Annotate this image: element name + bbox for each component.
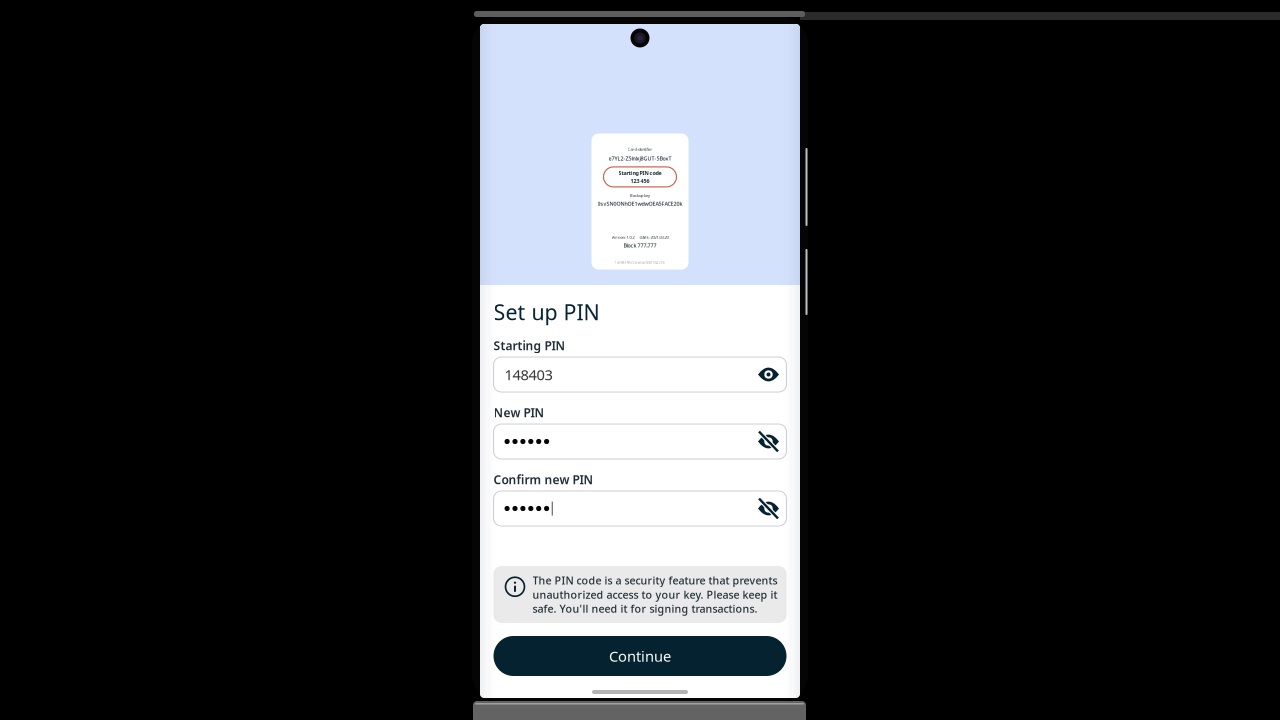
staticText: Backup key	[630, 193, 650, 198]
staticText: Block 777,777	[623, 242, 656, 249]
staticText: 1vc5N8CNhV2L5w5w2S9A1VLZC20b	[615, 261, 665, 264]
staticText: Card identifier	[627, 146, 652, 152]
staticText: New PIN	[493, 404, 544, 420]
staticText: 9svSN0ONhOE1wdwOEA5FACE20k	[597, 200, 682, 207]
button[interactable]: Show PIN	[752, 424, 784, 458]
staticText: Starting PIN code	[618, 169, 661, 176]
staticText: Version: 1.0.2 DATE: 2021-03-20	[611, 235, 668, 240]
staticText: The PIN code is a security feature that …	[532, 573, 777, 616]
button[interactable]: Show PIN	[752, 491, 784, 525]
button[interactable]: Hide PIN	[752, 357, 784, 391]
staticText: Confirm new PIN	[493, 471, 593, 487]
staticText: Starting PIN	[493, 337, 565, 353]
staticText: Continue	[609, 646, 671, 666]
button[interactable]: Continue	[493, 636, 786, 676]
staticText: 148403	[504, 365, 552, 384]
staticText: 123 456	[630, 177, 649, 184]
staticText: Set up PIN	[493, 298, 599, 326]
staticText: e7YL2-Z5lnlxj8GUT-5BoxT	[608, 155, 671, 162]
